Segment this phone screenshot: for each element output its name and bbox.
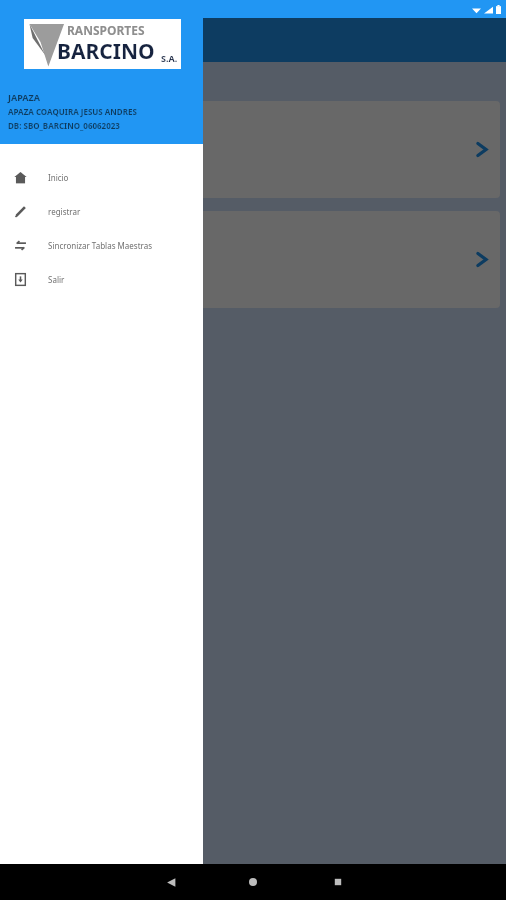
staticText: APAZA COAQUIRA JESUS ANDRES — [8, 106, 137, 117]
staticText: JAPAZA — [8, 91, 41, 103]
staticText: RANSPORTES — [67, 22, 145, 38]
other: Home — [248, 877, 258, 887]
button[interactable]: Salir — [0, 262, 203, 296]
staticText: DB: SBO_BARCINO_06062023 — [8, 120, 120, 131]
staticText: Salir — [48, 274, 65, 285]
button[interactable] — [6, 211, 500, 308]
staticText: Inicio — [48, 172, 69, 183]
button[interactable]: Inicio — [0, 160, 203, 194]
other: Back — [166, 877, 177, 888]
staticText: S.A. — [161, 52, 178, 64]
staticText: Sincronizar Tablas Maestras — [48, 240, 152, 251]
staticText: registrar — [48, 206, 81, 217]
button[interactable]: registrar — [0, 194, 203, 228]
button[interactable] — [6, 101, 500, 198]
button[interactable]: Sincronizar — [0, 228, 203, 262]
other: Recents — [333, 877, 343, 887]
staticText: BARCINO — [57, 37, 155, 66]
